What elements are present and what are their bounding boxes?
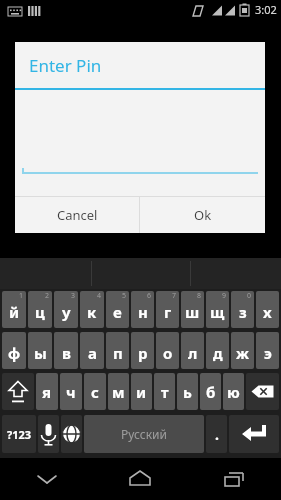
button[interactable]: в [54,332,78,369]
button[interactable]: у [54,291,78,328]
staticText: Русский [121,426,167,442]
staticText: с [91,382,99,402]
staticText: ц [35,302,45,322]
staticText: щ [210,302,225,322]
button[interactable]: Ok [140,197,265,233]
staticText: р [138,343,148,363]
button[interactable]: т [154,373,175,410]
staticText: 9 [222,291,227,301]
button[interactable]: ?123 [2,415,36,453]
button[interactable]: . [206,415,227,453]
staticText: й [9,302,20,322]
staticText: ф [8,343,21,363]
staticText: у [62,302,71,322]
staticText: т [161,382,169,402]
button[interactable]: ц [28,291,52,328]
staticText: 4 [97,291,102,301]
staticText: ю [227,382,240,402]
button[interactable]: и [131,373,152,410]
staticText: з [239,302,247,322]
staticText: 5 [122,291,127,301]
button[interactable]: Cancel [15,197,139,233]
staticText: ж [236,343,249,363]
staticText: х [263,302,272,322]
button[interactable]: ь [177,373,198,410]
button[interactable]: Recents [187,458,281,500]
staticText: ш [185,302,200,322]
button[interactable]: ч [60,373,82,410]
button[interactable]: Backspace [246,373,279,410]
button[interactable]: Change language [61,415,82,453]
staticText: е [113,302,122,322]
button[interactable]: м [108,373,129,410]
staticText: и [136,382,147,402]
staticText: ы [34,343,47,363]
button[interactable]: р [131,332,154,369]
button[interactable]: п [106,332,129,369]
staticText: ь [183,382,192,402]
button[interactable]: Enter [229,415,279,453]
staticText: б [206,382,216,402]
staticText: я [42,382,52,402]
staticText: 3 [71,291,76,301]
button[interactable]: э [256,332,279,369]
button[interactable]: д [206,332,229,369]
button[interactable]: л [181,332,204,369]
staticText: 7 [172,291,177,301]
staticText: н [138,302,148,322]
staticText: э [264,343,272,363]
staticText: Ok [194,206,212,224]
staticText: г [164,302,172,322]
button[interactable]: й [2,291,26,328]
button[interactable]: ю [223,373,244,410]
staticText: Cancel [57,206,98,224]
button[interactable]: а [80,332,104,369]
staticText: к [87,302,97,322]
button[interactable]: я [36,373,58,410]
staticText: . [215,425,219,444]
staticText: 1 [19,291,24,301]
button[interactable]: з [231,291,254,328]
staticText: д [213,343,223,363]
button[interactable]: г [156,291,179,328]
staticText: л [188,343,198,363]
button[interactable]: к [80,291,104,328]
staticText: 8 [197,291,202,301]
button[interactable]: с [84,373,106,410]
button[interactable]: Back [0,458,93,500]
button[interactable]: н [131,291,154,328]
staticText: п [113,343,123,363]
staticText: 0 [247,291,252,301]
button[interactable]: е [106,291,129,328]
button[interactable]: Русский [84,415,204,453]
button[interactable]: щ [206,291,229,328]
staticText: 6 [147,291,152,301]
staticText: в [62,343,71,363]
button[interactable]: Home [93,458,187,500]
staticText: м [112,382,125,402]
staticText: 3:02 [255,2,277,17]
button[interactable]: о [156,332,179,369]
staticText: о [163,343,173,363]
staticText: 2 [45,291,50,301]
button[interactable]: Voice input [38,415,59,453]
button[interactable]: ш [181,291,204,328]
button[interactable]: б [200,373,221,410]
button[interactable]: ы [28,332,52,369]
button[interactable]: х [256,291,279,328]
staticText: Enter Pin [29,54,102,77]
staticText: ?123 [7,427,32,442]
button[interactable]: ф [2,332,26,369]
staticText: ч [66,382,76,402]
button[interactable]: Shift [2,373,34,410]
staticText: а [88,343,97,363]
button[interactable]: ж [231,332,254,369]
